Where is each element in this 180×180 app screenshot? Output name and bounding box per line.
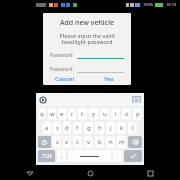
- staticText: i: [115, 110, 117, 118]
- staticText: m: [119, 138, 125, 146]
- staticText: t: [81, 110, 84, 118]
- button[interactable]: z: [53, 136, 61, 148]
- button[interactable]: p: [133, 108, 142, 120]
- staticText: v: [87, 138, 91, 146]
- staticText: u: [103, 110, 107, 118]
- button[interactable]: Space: [68, 150, 111, 162]
- staticText: q: [40, 110, 44, 118]
- button[interactable]: y: [89, 108, 98, 120]
- staticText: g: [87, 124, 91, 132]
- button[interactable]: j: [106, 122, 115, 134]
- staticText: 100%: [143, 2, 154, 7]
- button[interactable]: i: [111, 108, 120, 120]
- staticText: c: [76, 138, 79, 146]
- button[interactable]: w: [48, 108, 56, 120]
- staticText: j: [110, 124, 112, 132]
- button[interactable]: c: [73, 136, 82, 148]
- button[interactable]: Password: [50, 51, 124, 59]
- button[interactable]: ?123: [38, 150, 55, 162]
- staticText: e: [60, 110, 64, 118]
- button[interactable]: Clipboard: [132, 96, 141, 103]
- button[interactable]: e: [58, 108, 66, 120]
- button[interactable]: Recent apps: [120, 166, 180, 180]
- button[interactable]: Cancel: [43, 73, 87, 85]
- button[interactable]: ,: [57, 150, 66, 162]
- staticText: b: [98, 138, 102, 146]
- staticText: h: [98, 124, 102, 132]
- button[interactable]: f: [73, 122, 82, 134]
- button[interactable]: n: [106, 136, 115, 148]
- staticText: Password: [50, 52, 73, 59]
- button[interactable]: g: [84, 122, 93, 134]
- button[interactable]: d: [63, 122, 71, 134]
- button[interactable]: Home: [60, 166, 120, 180]
- staticText: ?123: [42, 153, 52, 159]
- staticText: .: [117, 152, 119, 160]
- staticText: Password: [50, 66, 73, 73]
- staticText: r: [71, 110, 74, 118]
- staticText: x: [65, 138, 69, 146]
- button[interactable]: k: [117, 122, 126, 134]
- staticText: l: [132, 124, 134, 132]
- button[interactable]: Yes: [87, 73, 131, 85]
- staticText: z: [56, 138, 59, 146]
- staticText: Yes: [104, 75, 114, 83]
- staticText: s: [56, 124, 59, 132]
- button[interactable]: b: [95, 136, 104, 148]
- button[interactable]: Password: [50, 65, 124, 73]
- button[interactable]: h: [95, 122, 104, 134]
- button[interactable]: m: [117, 136, 126, 148]
- button[interactable]: r: [68, 108, 76, 120]
- button[interactable]: Enter: [124, 150, 142, 162]
- staticText: a: [45, 124, 49, 132]
- staticText: d: [65, 124, 69, 132]
- button[interactable]: Shift: [38, 136, 51, 148]
- button[interactable]: o: [122, 108, 131, 120]
- button[interactable]: .: [113, 150, 122, 162]
- button[interactable]: s: [53, 122, 61, 134]
- staticText: Cancel: [55, 75, 75, 83]
- button[interactable]: x: [63, 136, 71, 148]
- button[interactable]: q: [38, 108, 46, 120]
- button[interactable]: a: [43, 122, 51, 134]
- button[interactable]: t: [78, 108, 87, 120]
- staticText: k: [120, 124, 124, 132]
- staticText: Please input the valid headlight passwor…: [51, 32, 123, 46]
- staticText: n: [109, 138, 113, 146]
- staticText: f: [76, 124, 79, 132]
- staticText: 16:19: [166, 2, 177, 7]
- button[interactable]: l: [128, 122, 137, 134]
- button[interactable]: Keyboard settings: [39, 96, 47, 104]
- staticText: ,: [61, 152, 63, 160]
- button[interactable]: v: [84, 136, 93, 148]
- button[interactable]: u: [100, 108, 109, 120]
- staticText: o: [125, 110, 129, 118]
- staticText: w: [50, 110, 55, 118]
- staticText: Add new vehicle: [43, 18, 131, 28]
- staticText: p: [136, 110, 140, 118]
- button[interactable]: Back: [0, 166, 60, 180]
- button[interactable]: Backspace: [128, 136, 142, 148]
- staticText: y: [92, 110, 96, 118]
